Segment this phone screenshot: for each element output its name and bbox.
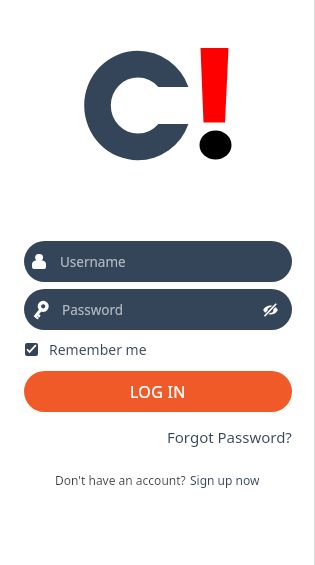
button[interactable]: Sign up now (190, 472, 260, 488)
button[interactable]: Show password (260, 300, 280, 320)
button[interactable]: Remember me (25, 340, 147, 359)
button[interactable]: Forgot Password? (167, 427, 292, 447)
staticText: Username (60, 253, 126, 271)
staticText: Don't have an account? (55, 472, 186, 488)
staticText: Password (62, 301, 124, 319)
button[interactable]: LOG IN (24, 371, 292, 412)
button[interactable]: Password (24, 289, 292, 330)
button[interactable]: Username (24, 241, 292, 282)
staticText: Remember me (49, 340, 147, 359)
staticText: LOG IN (130, 381, 186, 403)
